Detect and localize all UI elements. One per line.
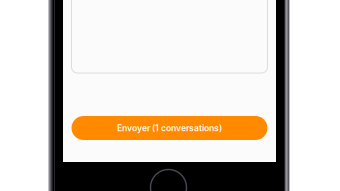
button[interactable]: Envoyer (1 conversations): [71, 116, 267, 140]
staticText: Envoyer (1 conversations): [117, 123, 222, 133]
